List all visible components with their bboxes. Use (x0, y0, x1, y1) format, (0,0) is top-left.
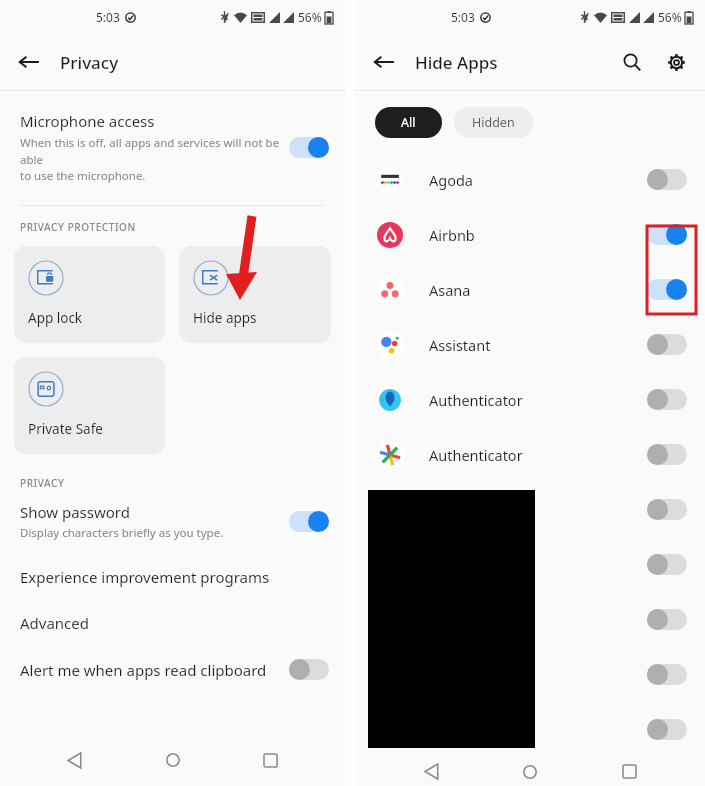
button[interactable]: Off (647, 664, 687, 685)
staticText: Privacy (60, 51, 119, 74)
button[interactable]: Settings (661, 47, 691, 77)
button[interactable]: Home (508, 757, 552, 786)
staticText (429, 555, 647, 575)
button[interactable]: Off (647, 499, 687, 520)
other: Back (18, 51, 40, 73)
button[interactable]: Asana (355, 262, 705, 317)
button[interactable]: Experience improvement programs (0, 567, 345, 587)
staticText: Display characters briefly as you type. (20, 525, 224, 541)
button[interactable]: On (289, 511, 329, 532)
staticText (429, 610, 647, 630)
button[interactable]: Back (0, 34, 345, 90)
button[interactable]: Assistant (355, 317, 705, 372)
button[interactable]: Off (355, 482, 705, 537)
button[interactable]: App lock (14, 246, 165, 343)
staticText: Microphone access (20, 111, 155, 131)
staticText: Agoda (429, 170, 647, 190)
staticText: PRIVACY PROTECTION (20, 220, 136, 234)
staticText: Assistant (429, 335, 647, 355)
staticText: Experience improvement programs (20, 567, 270, 587)
staticText: Authenticator (429, 390, 647, 410)
staticText: Show password (20, 502, 130, 522)
button[interactable]: On (647, 224, 687, 245)
button[interactable]: Airbnb (355, 207, 705, 262)
button[interactable]: Off (355, 592, 705, 647)
button[interactable]: Hide apps (179, 246, 331, 343)
button[interactable]: Back (410, 757, 454, 786)
staticText: 5:03 (96, 9, 120, 25)
staticText: Asana (429, 280, 647, 300)
button[interactable]: Recents (607, 757, 651, 786)
button[interactable]: Recents (248, 738, 292, 782)
staticText: Hidden (472, 114, 515, 131)
staticText: Airbnb (429, 225, 647, 245)
button[interactable]: Microphone access (0, 109, 345, 193)
button[interactable]: Off (355, 647, 705, 702)
button[interactable]: Off (647, 554, 687, 575)
staticText: All (401, 114, 416, 131)
button[interactable]: Off (647, 169, 687, 190)
button[interactable]: Alert me when apps read clipboard (0, 659, 345, 680)
button[interactable]: Off (647, 719, 687, 740)
button[interactable]: Search (617, 47, 647, 77)
button[interactable]: Authenticator (355, 427, 705, 482)
staticText: Advanced (20, 613, 90, 633)
staticText: Alert me when apps read clipboard (20, 660, 289, 680)
other: Back (373, 51, 395, 73)
button[interactable]: Off (289, 659, 329, 680)
button[interactable]: Private Safe (14, 357, 165, 454)
staticText (429, 720, 647, 740)
button[interactable]: Hidden (454, 107, 533, 138)
button[interactable]: Back (373, 51, 395, 73)
staticText: When this is off, all apps and services … (20, 135, 283, 183)
staticText: Hide Apps (415, 51, 498, 74)
button[interactable]: Home (151, 738, 195, 782)
button[interactable]: Off (647, 389, 687, 410)
staticText: Hide apps (193, 309, 257, 327)
button[interactable]: All (375, 107, 442, 138)
button[interactable]: Off (355, 537, 705, 592)
button[interactable]: Advanced (0, 613, 345, 633)
staticText (429, 665, 647, 685)
button[interactable]: Off (647, 334, 687, 355)
staticText: 5:03 (451, 9, 475, 25)
button[interactable]: On (647, 279, 687, 300)
button[interactable]: Agoda (355, 152, 705, 207)
button[interactable]: Off (647, 609, 687, 630)
button[interactable]: Back (53, 738, 97, 782)
staticText (429, 500, 647, 520)
staticText: 56% (658, 9, 682, 25)
button[interactable]: Off (647, 444, 687, 465)
staticText: Private Safe (28, 420, 103, 438)
staticText: Authenticator (429, 445, 647, 465)
staticText: App lock (28, 309, 83, 327)
staticText: PRIVACY (20, 476, 65, 490)
button[interactable]: On (289, 137, 329, 158)
button[interactable]: Off (355, 702, 705, 757)
button[interactable]: Show password (0, 502, 345, 541)
button[interactable]: Authenticator (355, 372, 705, 427)
staticText: 56% (298, 9, 322, 25)
